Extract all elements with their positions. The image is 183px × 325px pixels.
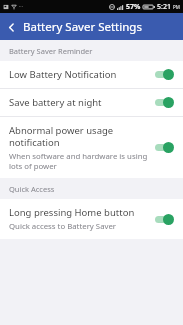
staticText: Quick Access [9,184,55,194]
staticText: When software and hardware is using lots… [9,151,148,171]
staticText: PM [173,4,180,10]
button[interactable]: Toggle [154,141,175,154]
button[interactable]: Long pressing Home button [0,199,183,239]
staticText: 57% [126,2,141,12]
staticText: Save battery at night [9,96,102,109]
staticText: Quick access to Battery Saver [9,221,117,232]
button[interactable]: Toggle [154,213,175,226]
button[interactable]: Low Battery Notification [0,61,183,88]
staticText: Low Battery Notification [9,68,117,81]
button[interactable]: Save battery at night [0,89,183,116]
button[interactable]: Toggle [154,68,175,81]
staticText: Battery Saver Settings [23,19,142,35]
staticText: Abnormal power usage notification [9,124,148,149]
staticText: 5:21 [157,2,171,12]
button[interactable]: Back [0,16,22,38]
button[interactable]: Toggle [154,96,175,109]
button[interactable]: Abnormal power usage notification [0,117,183,178]
staticText: Long pressing Home button [9,206,135,219]
staticText: ··· [19,3,24,10]
staticText: Battery Saver Reminder [9,46,93,56]
